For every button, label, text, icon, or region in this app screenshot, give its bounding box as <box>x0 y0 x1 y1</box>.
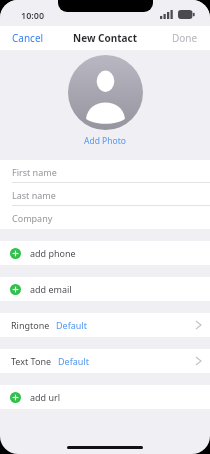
staticText: Ringtone <box>11 319 50 331</box>
staticText: Default <box>56 319 87 331</box>
staticText: First name <box>12 166 57 178</box>
staticText: Company <box>12 212 53 224</box>
button[interactable]: Done <box>160 27 210 49</box>
staticText: add email <box>30 283 72 295</box>
staticText: Add Photo <box>84 135 126 147</box>
staticText: add url <box>30 391 61 403</box>
staticText: Default <box>58 355 89 367</box>
button[interactable]: Ringtone <box>0 313 210 337</box>
button[interactable]: Last name <box>0 183 210 206</box>
staticText: add phone <box>30 247 76 259</box>
staticText: Text Tone <box>11 355 52 367</box>
button[interactable]: Cancel <box>0 27 56 49</box>
button[interactable]: Add Photo <box>68 55 143 130</box>
staticText: Done <box>172 31 198 45</box>
staticText: New Contact <box>73 31 138 45</box>
button[interactable]: add phone <box>0 241 210 265</box>
staticText: Cancel <box>12 31 44 45</box>
button[interactable]: Add Photo <box>78 134 132 148</box>
button[interactable]: First name <box>0 160 210 183</box>
button[interactable]: Company <box>0 206 210 229</box>
button[interactable]: add url <box>0 385 210 409</box>
staticText: Last name <box>12 189 56 201</box>
staticText: 10:00 <box>21 9 45 21</box>
button[interactable]: add email <box>0 277 210 301</box>
button[interactable]: Text Tone <box>0 349 210 373</box>
